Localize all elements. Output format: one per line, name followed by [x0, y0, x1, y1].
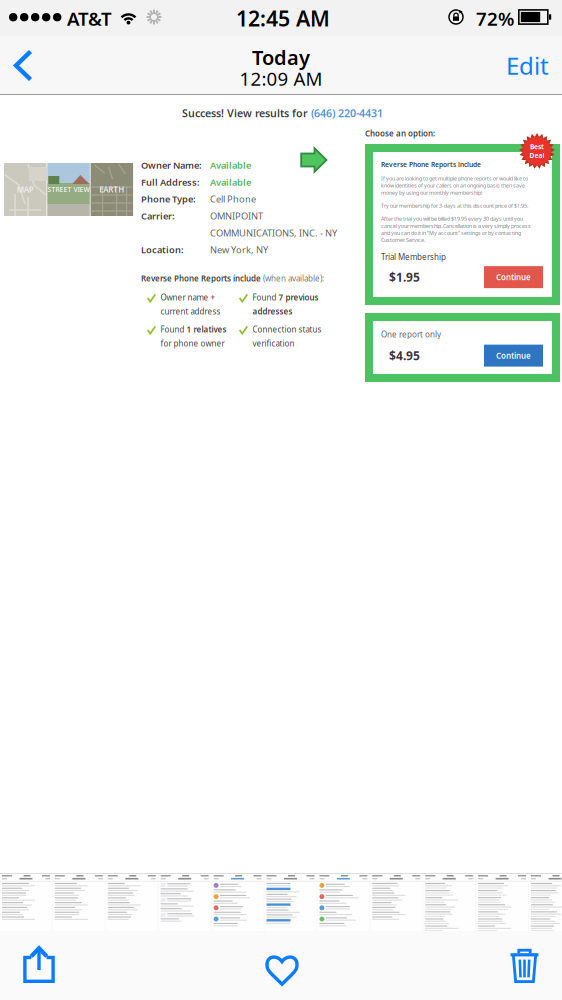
staticText: After the trial you will be billed $19.9…	[381, 215, 531, 243]
staticText: New York, NY	[210, 243, 268, 256]
staticText: Today	[252, 44, 310, 71]
staticText: Owner Name:	[141, 159, 202, 171]
staticText: for phone owner	[160, 338, 224, 349]
staticText: Choose an option:	[365, 128, 435, 139]
staticText: Location:	[141, 243, 184, 256]
staticText: 12:09 AM	[239, 66, 322, 91]
staticText: One report only	[381, 329, 441, 340]
staticText: Try our membership for 3-days at this di…	[381, 202, 528, 209]
button[interactable]: Edit	[492, 36, 562, 95]
staticText: Full Address:	[141, 176, 200, 188]
staticText: Owner name +	[160, 292, 215, 303]
staticText: AT&T	[67, 6, 112, 31]
staticText: $1.95	[389, 269, 420, 285]
staticText: Reverse Phone Reports include	[381, 160, 481, 169]
staticText: COMMUNICATIONS, INC. - NY	[210, 227, 337, 239]
staticText: Trial Membership	[381, 251, 446, 262]
staticText: Deal	[529, 151, 544, 160]
staticText: Edit	[506, 50, 549, 81]
staticText: 7 previous	[278, 292, 318, 303]
button[interactable]: Delete	[485, 931, 562, 1000]
button[interactable]: Continue	[484, 266, 543, 288]
staticText: 12:45 AM	[236, 4, 330, 32]
staticText: Continue	[496, 272, 531, 282]
staticText: STREET VIEW	[47, 185, 89, 194]
button[interactable]: Continue	[484, 345, 543, 367]
staticText: Cell Phone	[210, 193, 256, 205]
button[interactable]: Favorite	[242, 931, 320, 1000]
staticText: verification	[252, 338, 294, 349]
staticText: (646) 220-4431	[311, 106, 383, 120]
staticText: If you are looking to get multiple phone…	[381, 175, 528, 196]
staticText: Connection status	[252, 324, 321, 335]
staticText: OMNIPOINT	[210, 210, 263, 222]
staticText: Reverse Phone Reports include	[141, 273, 263, 284]
button[interactable]: Share	[0, 931, 78, 1000]
staticText: Continue	[496, 350, 531, 361]
staticText: MAP	[17, 184, 34, 195]
staticText: Success! View results for	[182, 106, 311, 120]
staticText: $4.95	[389, 348, 420, 364]
staticText: Phone Type:	[141, 193, 196, 205]
staticText: 72%	[476, 6, 514, 31]
staticText: Best	[530, 142, 544, 151]
staticText: Available	[210, 176, 251, 188]
button[interactable]: Back	[0, 36, 58, 95]
staticText: 1 relatives	[186, 324, 226, 335]
staticText: Found	[160, 324, 186, 335]
staticText: addresses	[252, 306, 292, 317]
staticText: EARTH	[99, 184, 124, 195]
staticText: current address	[160, 306, 220, 317]
staticText: Found	[252, 292, 278, 303]
staticText: Carrier:	[141, 210, 175, 222]
staticText: (when available):	[263, 273, 324, 284]
staticText: Available	[210, 159, 251, 171]
